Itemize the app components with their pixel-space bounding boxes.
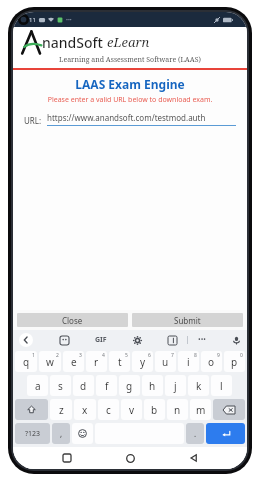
staticText: ••• [198, 335, 206, 345]
staticText: 4 [102, 352, 105, 359]
button[interactable]: x [74, 399, 96, 420]
button[interactable]: Translate [168, 336, 177, 345]
button[interactable]: Home [120, 448, 140, 468]
button[interactable]: g [119, 375, 140, 396]
staticText: p [231, 355, 238, 369]
staticText: v [129, 403, 135, 417]
staticText: 2 [56, 352, 59, 359]
button[interactable]: u [155, 351, 176, 372]
button[interactable]: c [98, 399, 119, 420]
staticText: c [106, 403, 111, 417]
staticText: d [80, 379, 87, 393]
staticText: LAAS Exam Engine [13, 76, 247, 92]
button[interactable]: a [27, 375, 48, 396]
button[interactable]: w [39, 351, 61, 372]
button[interactable]: Emoji [72, 423, 93, 444]
button[interactable]: Enter [206, 423, 245, 444]
staticText: l [220, 379, 223, 393]
staticText: ?123 [25, 429, 41, 439]
staticText: q [23, 355, 30, 369]
staticText: o [208, 355, 215, 369]
button[interactable]: n [167, 399, 188, 420]
staticText: 11 [29, 16, 36, 24]
staticText: u [162, 355, 169, 369]
button[interactable]: v [121, 399, 142, 420]
button[interactable]: Comma [52, 423, 70, 444]
button[interactable]: y [132, 351, 153, 372]
staticText: a [35, 379, 41, 393]
button[interactable]: Back [19, 333, 33, 347]
staticText: 9 [217, 352, 220, 359]
staticText: Please enter a valid URL below to downlo… [13, 95, 247, 105]
staticText: nandSoft [42, 33, 103, 52]
button[interactable]: e [63, 351, 84, 372]
button[interactable]: Settings [133, 336, 142, 345]
button[interactable]: https://www.anandsoft.com/testmod.auth [47, 112, 236, 126]
button[interactable]: More options [198, 335, 206, 345]
staticText: z [59, 403, 64, 417]
staticText: i [187, 355, 190, 369]
button[interactable]: j [165, 375, 186, 396]
button[interactable]: Backspace [213, 399, 245, 420]
staticText: g [126, 379, 133, 393]
staticText: j [174, 379, 177, 393]
button[interactable]: d [73, 375, 94, 396]
staticText: r [94, 355, 99, 369]
staticText: 1 [32, 352, 35, 359]
button[interactable]: Period [186, 423, 204, 444]
staticText: Learning and Assessment Software (LAAS) [13, 55, 247, 65]
button[interactable]: Voice input [232, 336, 241, 345]
staticText: , [60, 428, 63, 439]
staticText: e [71, 355, 77, 369]
button[interactable]: h [142, 375, 163, 396]
button[interactable]: Back [184, 448, 204, 468]
button[interactable]: p [224, 351, 245, 372]
staticText: n [174, 403, 181, 417]
staticText: t [118, 355, 122, 369]
staticText: eLearn [107, 33, 150, 51]
staticText: w [46, 355, 54, 369]
button[interactable]: Shift [15, 399, 48, 420]
staticText: 7 [171, 352, 174, 359]
button[interactable]: l [211, 375, 232, 396]
button[interactable]: GIF [95, 335, 107, 345]
staticText: b [151, 403, 158, 417]
staticText: m [196, 403, 206, 417]
button[interactable]: b [144, 399, 165, 420]
button[interactable]: o [201, 351, 222, 372]
staticText: h [149, 379, 156, 393]
button[interactable]: Recent apps [57, 448, 77, 468]
button[interactable]: ?123 [15, 423, 50, 444]
button[interactable]: s [50, 375, 71, 396]
staticText: 5 [125, 352, 128, 359]
staticText: f [105, 379, 109, 393]
button[interactable]: Stickers [60, 336, 69, 345]
button[interactable]: m [190, 399, 211, 420]
staticText: ••• [66, 17, 72, 24]
button[interactable]: f [96, 375, 117, 396]
staticText: k [196, 379, 202, 393]
staticText: URL: [24, 115, 42, 126]
button[interactable]: k [188, 375, 209, 396]
button[interactable]: Close [17, 313, 128, 327]
staticText: 8 [194, 352, 197, 359]
button[interactable]: i [178, 351, 199, 372]
staticText: 0 [240, 352, 243, 359]
staticText: y [140, 355, 146, 369]
button[interactable]: r [86, 351, 107, 372]
staticText: 3 [79, 352, 82, 359]
staticText: https://www.anandsoft.com/testmod.auth [47, 112, 206, 123]
staticText: GIF [95, 335, 107, 345]
staticText: x [82, 403, 88, 417]
staticText: Close [62, 315, 83, 326]
button[interactable]: t [109, 351, 130, 372]
staticText: s [58, 379, 63, 393]
staticText: Submit [174, 315, 201, 326]
staticText: . [194, 428, 197, 439]
staticText: 6 [148, 352, 151, 359]
button[interactable]: q [15, 351, 37, 372]
button[interactable]: Submit [132, 313, 243, 327]
button[interactable]: z [50, 399, 72, 420]
